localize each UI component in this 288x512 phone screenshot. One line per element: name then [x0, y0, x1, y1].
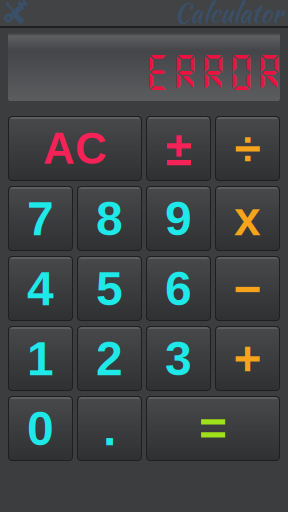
button[interactable]: 2 — [77, 326, 142, 391]
button[interactable]: . — [77, 396, 142, 461]
button[interactable]: + — [215, 326, 280, 391]
staticText: Calculator — [174, 0, 283, 32]
staticText: . — [103, 402, 116, 455]
button[interactable]: 4 — [8, 256, 73, 321]
button[interactable]: AC — [8, 116, 142, 181]
staticText: 5 — [96, 262, 123, 315]
button[interactable]: ± — [146, 116, 211, 181]
staticText: 1 — [27, 332, 54, 385]
button[interactable]: Settings — [0, 0, 28, 26]
button[interactable]: − — [215, 256, 280, 321]
button[interactable]: ÷ — [215, 116, 280, 181]
staticText: 9 — [165, 192, 192, 245]
staticText: 7 — [27, 192, 54, 245]
button[interactable]: 5 — [77, 256, 142, 321]
staticText: 6 — [165, 262, 192, 315]
staticText: = — [199, 402, 227, 455]
staticText: AC — [43, 124, 107, 173]
button[interactable]: 8 — [77, 186, 142, 251]
button[interactable]: 1 — [8, 326, 73, 391]
staticText: 0 — [27, 402, 54, 455]
staticText: 2 — [96, 332, 123, 385]
staticText: ± — [165, 122, 191, 175]
staticText: + — [233, 332, 261, 385]
staticText: ÷ — [234, 122, 260, 175]
staticText: 4 — [27, 262, 54, 315]
staticText: − — [233, 262, 261, 315]
button[interactable]: 7 — [8, 186, 73, 251]
button[interactable]: = — [146, 396, 280, 461]
staticText: ERROR — [143, 49, 283, 94]
staticText: 8 — [96, 192, 123, 245]
button[interactable]: x — [215, 186, 280, 251]
staticText: 3 — [165, 332, 192, 385]
staticText: x — [234, 192, 261, 245]
button[interactable]: 9 — [146, 186, 211, 251]
button[interactable]: 3 — [146, 326, 211, 391]
button[interactable]: 6 — [146, 256, 211, 321]
button[interactable]: 0 — [8, 396, 73, 461]
